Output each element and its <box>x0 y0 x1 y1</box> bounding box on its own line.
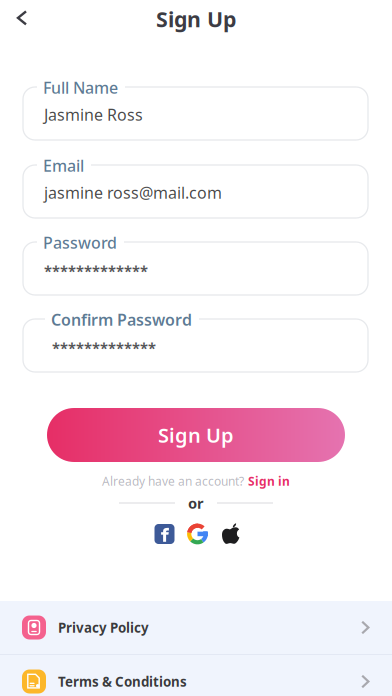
staticText: ************* <box>44 261 148 280</box>
staticText: Full Name <box>43 77 118 98</box>
staticText: ************* <box>52 338 156 357</box>
staticText: Already have an account? <box>102 473 244 489</box>
staticText: Password <box>43 232 117 253</box>
staticText: Sign Up <box>158 422 234 448</box>
staticText: Privacy Policy <box>58 619 149 636</box>
staticText: Sign Up <box>156 5 236 33</box>
button[interactable]: Terms & Conditions <box>0 655 392 696</box>
button[interactable]: Privacy Policy <box>0 601 392 654</box>
staticText: Email <box>43 155 84 176</box>
button[interactable]: Sign up with Apple <box>214 522 247 546</box>
staticText: or <box>188 493 204 513</box>
staticText: Terms & Conditions <box>58 673 187 690</box>
button[interactable]: Sign up with Google <box>181 522 214 546</box>
staticText: Sign in <box>248 473 290 489</box>
button[interactable]: Back <box>2 0 42 36</box>
staticText: Confirm Password <box>51 309 192 330</box>
button[interactable]: Sign up with Facebook <box>148 522 181 546</box>
button[interactable]: Sign Up <box>47 408 345 462</box>
staticText: jasmine ross@mail.com <box>44 182 222 203</box>
staticText: Jasmine Ross <box>44 104 143 125</box>
button[interactable]: Already have an account? <box>0 472 392 490</box>
